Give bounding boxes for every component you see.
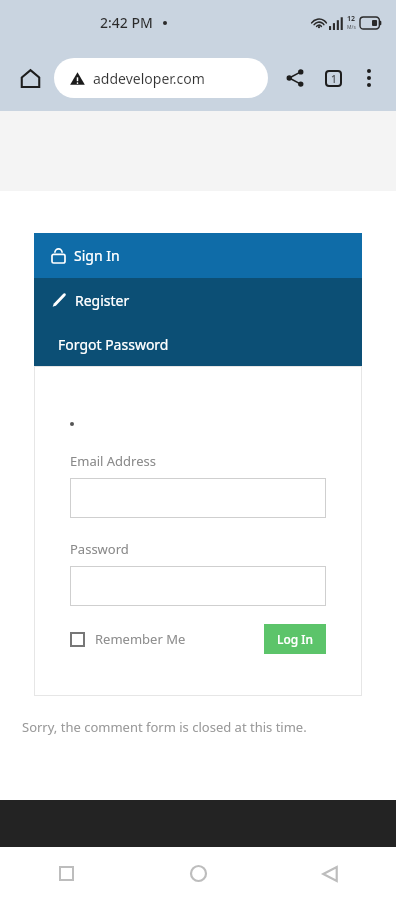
button[interactable]: Share bbox=[276, 59, 314, 97]
staticText: Sign In bbox=[74, 246, 120, 265]
button[interactable]: Remember Me bbox=[70, 630, 186, 648]
staticText: Log In bbox=[277, 631, 314, 647]
button[interactable]: Sign In bbox=[34, 233, 362, 278]
staticText: addeveloper.com bbox=[93, 69, 205, 88]
button[interactable]: Register bbox=[34, 278, 362, 322]
button[interactable]: Recent apps bbox=[0, 847, 132, 900]
button[interactable]: Home bbox=[132, 847, 264, 900]
button[interactable]: Back bbox=[264, 847, 396, 900]
staticText: 1 bbox=[331, 72, 337, 86]
staticText: Sorry, the comment form is closed at thi… bbox=[22, 718, 374, 736]
button[interactable]: Forgot Password bbox=[34, 322, 362, 366]
staticText: 12 bbox=[347, 14, 356, 24]
staticText: Register bbox=[75, 291, 130, 310]
staticText: Email Address bbox=[70, 452, 156, 470]
staticText: Forgot Password bbox=[58, 335, 169, 354]
button[interactable]: Tabs bbox=[314, 59, 352, 97]
staticText: M/s bbox=[347, 24, 356, 31]
button[interactable] bbox=[70, 566, 326, 606]
staticText: Remember Me bbox=[95, 630, 186, 648]
button[interactable]: addeveloper.com bbox=[54, 58, 268, 98]
button[interactable]: Log In bbox=[264, 624, 326, 654]
staticText: Password bbox=[70, 540, 129, 558]
button[interactable]: Home bbox=[10, 58, 50, 98]
button[interactable]: More options bbox=[352, 61, 386, 95]
button[interactable] bbox=[70, 478, 326, 518]
staticText: 2:42 PM bbox=[100, 13, 153, 32]
